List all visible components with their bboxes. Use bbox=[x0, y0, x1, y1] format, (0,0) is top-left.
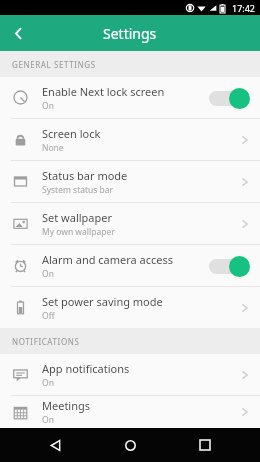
staticText: On bbox=[42, 100, 54, 112]
button[interactable]: App notifications bbox=[0, 354, 260, 395]
staticText: GENERAL SETTINGS bbox=[12, 59, 96, 70]
staticText: None bbox=[42, 142, 64, 154]
staticText: Settings bbox=[103, 24, 157, 43]
button[interactable]: Enable Next lock screen bbox=[0, 77, 260, 118]
button[interactable]: Back bbox=[0, 15, 36, 51]
staticText: App notifications bbox=[42, 361, 130, 376]
button[interactable]: Status bar mode bbox=[0, 161, 260, 202]
button[interactable]: Set wallpaper bbox=[0, 203, 260, 244]
staticText: Set wallpaper bbox=[42, 210, 113, 225]
staticText: Screen lock bbox=[42, 126, 101, 141]
staticText: Off bbox=[42, 310, 55, 322]
staticText: System status bar bbox=[42, 184, 114, 196]
button[interactable]: Meetings bbox=[0, 396, 260, 428]
staticText: Status bar mode bbox=[42, 168, 128, 183]
staticText: My own wallpaper bbox=[42, 226, 115, 238]
staticText: On bbox=[42, 414, 54, 426]
staticText: Set power saving mode bbox=[42, 294, 163, 309]
staticText: On bbox=[42, 377, 54, 389]
staticText: Alarm and camera access bbox=[42, 252, 174, 267]
button[interactable]: Screen lock bbox=[0, 119, 260, 160]
button[interactable]: Set power saving mode bbox=[0, 287, 260, 328]
button[interactable]: Recent apps bbox=[190, 430, 220, 460]
staticText: NOTIFICATIONS bbox=[12, 336, 80, 347]
staticText: 17:42 bbox=[232, 2, 256, 14]
staticText: Enable Next lock screen bbox=[42, 84, 165, 99]
button[interactable]: Alarm and camera access bbox=[0, 245, 260, 286]
button[interactable]: Home bbox=[115, 430, 145, 460]
staticText: On bbox=[42, 268, 54, 280]
button[interactable]: Back bbox=[40, 430, 70, 460]
staticText: Meetings bbox=[42, 398, 91, 413]
